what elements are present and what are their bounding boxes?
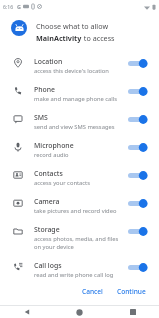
button[interactable]: Cancel <box>77 284 108 299</box>
staticText: Choose what to allow <box>36 21 109 31</box>
staticText: take pictures and record video <box>34 207 117 215</box>
staticText: Location <box>34 57 63 66</box>
button[interactable]: Back <box>0 306 53 318</box>
button[interactable]: Home <box>53 306 106 318</box>
button[interactable]: Toggle Phone permission <box>128 86 150 97</box>
staticText: make and manage phone calls <box>34 95 118 103</box>
staticText: record audio <box>34 151 69 159</box>
button[interactable]: Toggle Camera permission <box>128 198 150 209</box>
button[interactable]: Toggle Call logs permission <box>128 262 150 273</box>
button[interactable]: Call logs <box>0 256 159 284</box>
staticText: Contacts <box>34 169 63 178</box>
staticText: Phone <box>34 85 56 94</box>
button[interactable]: Microphone <box>0 136 159 164</box>
staticText: Camera <box>34 197 60 206</box>
staticText: 6:16 <box>3 3 14 10</box>
button[interactable]: Camera <box>0 192 159 220</box>
staticText: read and write phone call log <box>34 271 114 279</box>
button[interactable]: Location <box>0 52 159 80</box>
staticText: MainActivity <box>36 33 82 43</box>
staticText: Continue <box>117 287 146 296</box>
button[interactable]: Contacts <box>0 164 159 192</box>
staticText: Microphone <box>34 141 74 150</box>
staticText: Cancel <box>82 287 103 296</box>
staticText: Call logs <box>34 261 62 270</box>
staticText: access this device's location <box>34 67 109 75</box>
button[interactable]: Storage <box>0 220 159 256</box>
staticText: SMS <box>34 113 48 122</box>
staticText: access photos, media, and files on your … <box>34 235 124 251</box>
button[interactable]: Phone <box>0 80 159 108</box>
button[interactable]: Toggle Location permission <box>128 58 150 69</box>
button[interactable]: Toggle SMS permission <box>128 114 150 125</box>
button[interactable]: Recent apps <box>106 306 159 318</box>
button[interactable]: SMS <box>0 108 159 136</box>
staticText: to access <box>82 33 115 43</box>
staticText: G <box>17 3 21 10</box>
button[interactable]: Toggle Storage permission <box>128 226 150 237</box>
button[interactable]: Toggle Contacts permission <box>128 170 150 181</box>
staticText: send and view SMS messages <box>34 123 115 131</box>
button[interactable]: Toggle Microphone permission <box>128 142 150 153</box>
button[interactable]: Continue <box>112 284 151 299</box>
staticText: access your contacts <box>34 179 90 187</box>
staticText: Storage <box>34 225 60 234</box>
